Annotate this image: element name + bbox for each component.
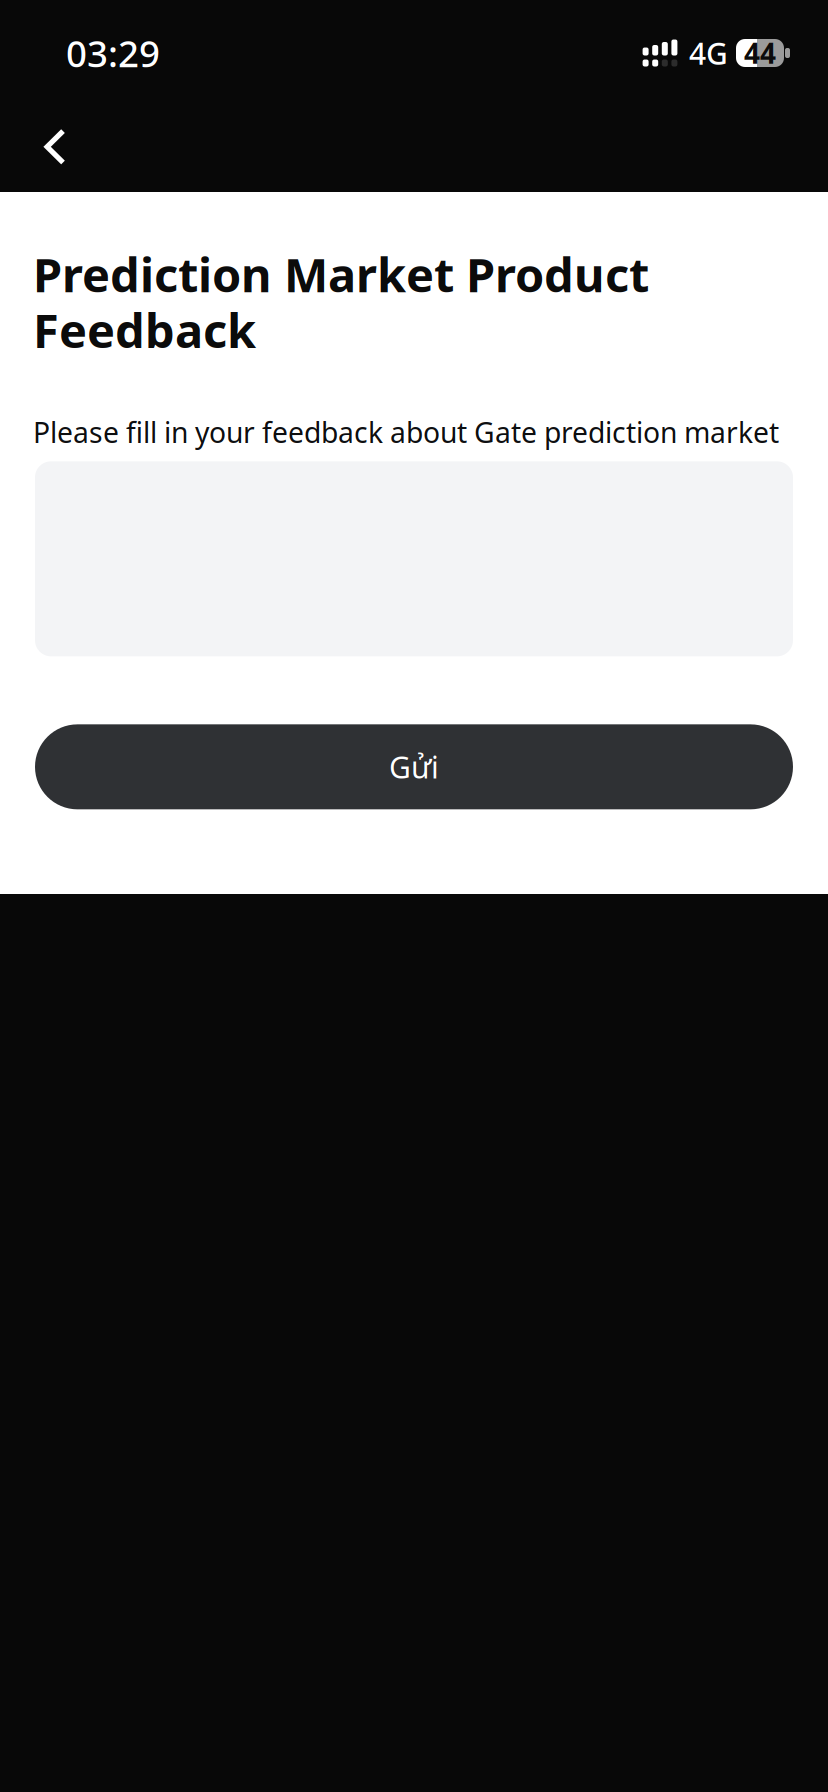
button[interactable]: Gửi — [35, 724, 793, 809]
staticText: Please fill in your feedback about Gate … — [33, 413, 779, 451]
staticText: 44 — [744, 34, 776, 72]
staticText: Prediction Market Product Feedback — [33, 242, 649, 362]
button[interactable]: Back — [16, 108, 94, 186]
staticText: Gửi — [389, 746, 439, 787]
staticText: 4G — [689, 33, 728, 73]
staticText: 03:29 — [66, 28, 160, 78]
